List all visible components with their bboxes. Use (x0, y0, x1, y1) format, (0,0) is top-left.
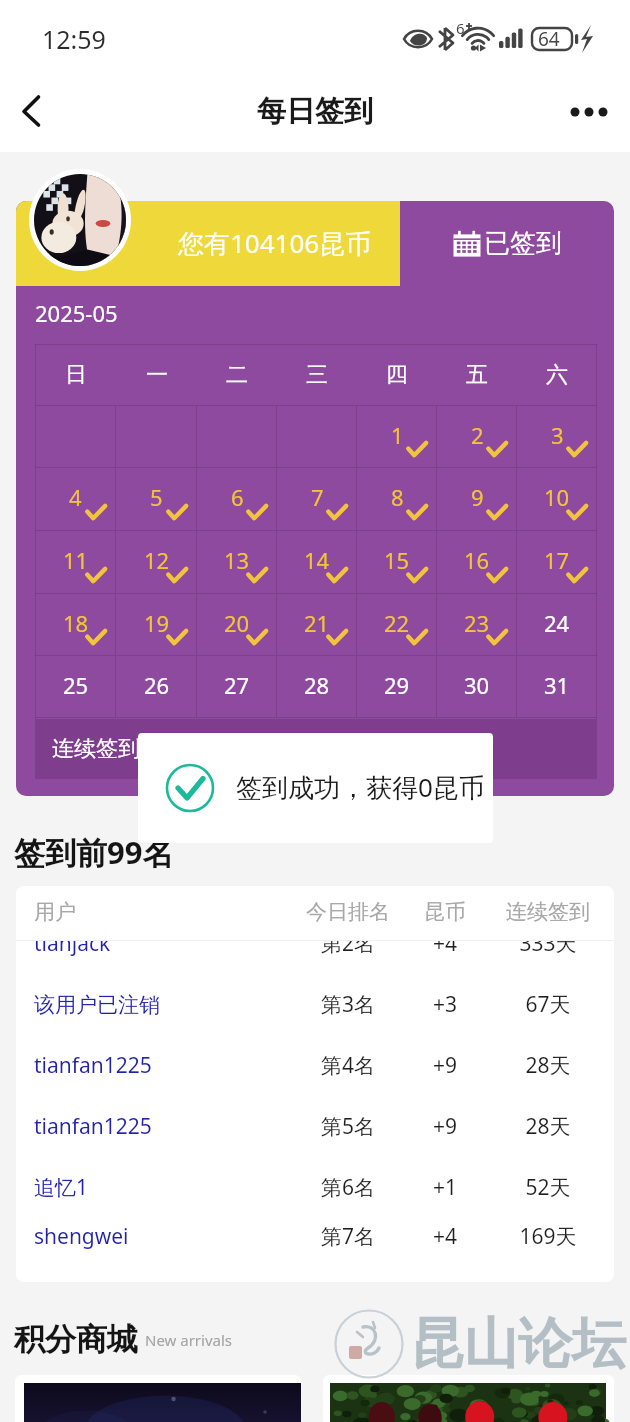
staticText: 30 (464, 670, 490, 700)
staticText: 8 (391, 482, 404, 512)
staticText: 28 (304, 670, 330, 700)
button[interactable]: More options (563, 85, 615, 137)
staticText: 昆币 (405, 899, 485, 925)
staticText: 六 (546, 361, 568, 389)
staticText: 连续签到 (52, 735, 140, 763)
staticText: 9 (471, 482, 484, 512)
staticText: +1 (405, 1173, 485, 1202)
staticText: 13 (224, 545, 250, 575)
staticText: 20 (224, 608, 250, 638)
staticText: tianjack (34, 941, 111, 958)
staticText: 第2名 (268, 941, 428, 958)
button[interactable]: 追忆1 (16, 1157, 614, 1218)
staticText: 第3名 (268, 990, 428, 1019)
button[interactable]: tianfan1225 (16, 1096, 614, 1157)
staticText: 52天 (468, 1173, 614, 1202)
staticText: 三 (306, 361, 328, 389)
staticText: 11 (63, 545, 89, 575)
staticText: 第4名 (268, 1051, 428, 1080)
staticText: +4 (405, 941, 485, 958)
staticText: +3 (405, 990, 485, 1019)
button[interactable]: 已签到 (400, 201, 614, 286)
staticText: 24 (544, 608, 570, 638)
staticText: 21 (304, 608, 330, 638)
staticText: 签到前99名 (14, 831, 174, 873)
staticText: 5 (150, 482, 163, 512)
staticText: 今日排名 (268, 899, 428, 925)
staticText: 28天 (468, 1112, 614, 1141)
staticText: 一 (146, 361, 168, 389)
button[interactable]: shengwei (16, 1218, 614, 1254)
staticText: 每日签到 (0, 93, 630, 130)
staticText: shengwei (34, 1222, 129, 1251)
staticText: 19 (144, 608, 170, 638)
staticText: 日 (65, 361, 87, 389)
staticText: 1 (391, 420, 404, 450)
staticText: 64 (538, 26, 560, 52)
staticText: 五 (466, 361, 488, 389)
staticText: 333天 (468, 941, 614, 958)
staticText: 积分商城 (14, 1320, 138, 1359)
button[interactable]: Back (2, 82, 60, 140)
staticText: 签到成功，获得0昆币 (236, 769, 485, 805)
staticText: +4 (405, 1222, 485, 1251)
staticText: 23 (464, 608, 490, 638)
staticText: 67天 (468, 990, 614, 1019)
button[interactable]: tianfan1225 (16, 1035, 614, 1096)
staticText: 16 (464, 545, 490, 575)
staticText: 4 (69, 482, 82, 512)
staticText: 31 (544, 670, 570, 700)
button[interactable]: tianjack (16, 941, 614, 974)
button[interactable]: 该用户已注销 (16, 974, 614, 1035)
staticText: 17 (544, 545, 570, 575)
staticText: 3 (551, 420, 564, 450)
staticText: 昆山论坛 (410, 1310, 626, 1378)
staticText: 2 (471, 420, 484, 450)
staticText: 该用户已注销 (34, 992, 160, 1018)
staticText: 12:59 (42, 22, 106, 56)
staticText: 追忆1 (34, 1173, 89, 1202)
staticText: 第7名 (268, 1222, 428, 1251)
staticText: 25 (63, 670, 89, 700)
staticText: +9 (405, 1051, 485, 1080)
staticText: 22 (384, 608, 410, 638)
staticText: 第6名 (268, 1173, 428, 1202)
staticText: tianfan1225 (34, 1051, 152, 1080)
staticText: +9 (405, 1112, 485, 1141)
staticText: 18 (63, 608, 89, 638)
staticText: 7 (311, 482, 324, 512)
staticText: 您有104106昆币 (178, 225, 372, 261)
staticText: 10 (544, 482, 570, 512)
staticText: 27 (224, 670, 250, 700)
staticText: 26 (144, 670, 170, 700)
staticText: tianfan1225 (34, 1112, 152, 1141)
staticText: 6 (456, 18, 465, 38)
staticText: New arrivals (145, 1330, 233, 1350)
staticText: 2025-05 (35, 298, 118, 328)
staticText: 6 (231, 482, 244, 512)
staticText: 15 (384, 545, 410, 575)
staticText: 二 (226, 361, 248, 389)
staticText: 已签到 (484, 227, 562, 260)
staticText: 用户 (34, 899, 76, 925)
staticText: 四 (386, 361, 408, 389)
staticText: 29 (384, 670, 410, 700)
staticText: 连续签到 (468, 899, 614, 925)
staticText: 169天 (468, 1222, 614, 1251)
staticText: 28天 (468, 1051, 614, 1080)
staticText: 14 (304, 545, 330, 575)
staticText: 12 (144, 545, 170, 575)
staticText: 第5名 (268, 1112, 428, 1141)
